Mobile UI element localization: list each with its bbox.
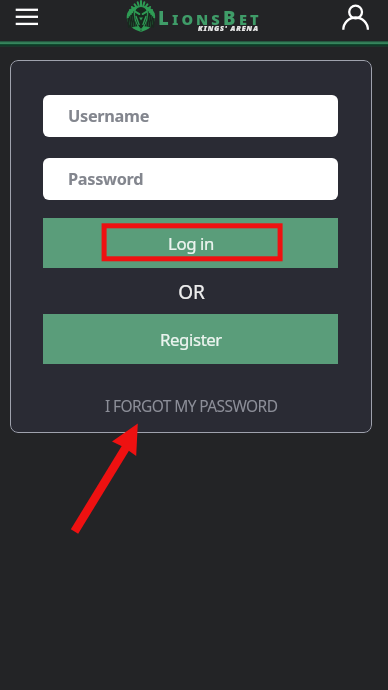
button[interactable]: Log in	[43, 218, 338, 268]
staticText: Password	[68, 168, 144, 190]
button[interactable]: Menu	[5, 0, 49, 41]
staticText: Username	[68, 105, 150, 127]
staticText: L	[158, 5, 172, 30]
button[interactable]: I FORGOT MY PASSWORD	[10, 393, 372, 417]
staticText: B	[223, 5, 239, 30]
button[interactable]: Account	[334, 0, 378, 41]
staticText: Log in	[168, 232, 214, 255]
staticText: I FORGOT MY PASSWORD	[105, 395, 278, 416]
button[interactable]: Password	[43, 158, 338, 200]
staticText: Register	[160, 328, 222, 351]
button[interactable]: Username	[43, 95, 338, 137]
staticText: OR	[178, 279, 205, 305]
button[interactable]: Register	[43, 314, 338, 364]
staticText: IONS	[172, 9, 223, 29]
staticText: KINGS' ARENA	[198, 24, 259, 34]
staticText: ET	[239, 9, 262, 29]
